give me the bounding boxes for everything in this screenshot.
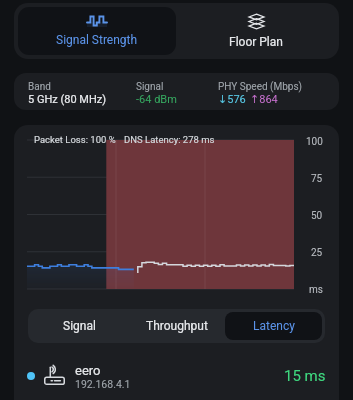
staticText: PHY Speed (Mbps) [218,81,303,93]
staticText: 5 GHz (80 MHz) [28,93,107,106]
staticText: Signal Strength [56,33,138,47]
button[interactable]: Signal [31,312,128,340]
staticText: 25 [311,247,323,259]
staticText: -64 dBm [136,93,177,106]
staticText: 100 [306,136,323,148]
staticText: Packet Loss: 100 % [34,134,116,145]
staticText: 15 ms [284,367,326,385]
staticText: Latency [253,319,295,333]
button[interactable]: Throughput [128,312,225,340]
staticText: Signal [63,319,96,333]
button[interactable]: Floor plan [176,7,335,55]
other: Floor plan [248,13,265,30]
staticText: DNS Latency: 278 ms [124,134,215,145]
staticText: eero [75,363,101,378]
staticText: Floor Plan [229,35,283,49]
staticText: ↓576 [218,93,246,106]
staticText: ↑864 [250,93,278,106]
staticText: 75 [311,173,323,185]
staticText: Band [28,81,51,93]
staticText: Throughput [146,319,208,333]
staticText: Signal [136,81,164,93]
staticText: 192.168.4.1 [75,378,131,390]
other: Signal strength [87,15,107,27]
button[interactable]: eero [14,353,339,399]
button[interactable]: Signal strength [18,7,176,55]
button[interactable]: Latency [225,312,322,340]
staticText: ms [309,284,323,296]
staticText: 50 [311,210,323,222]
